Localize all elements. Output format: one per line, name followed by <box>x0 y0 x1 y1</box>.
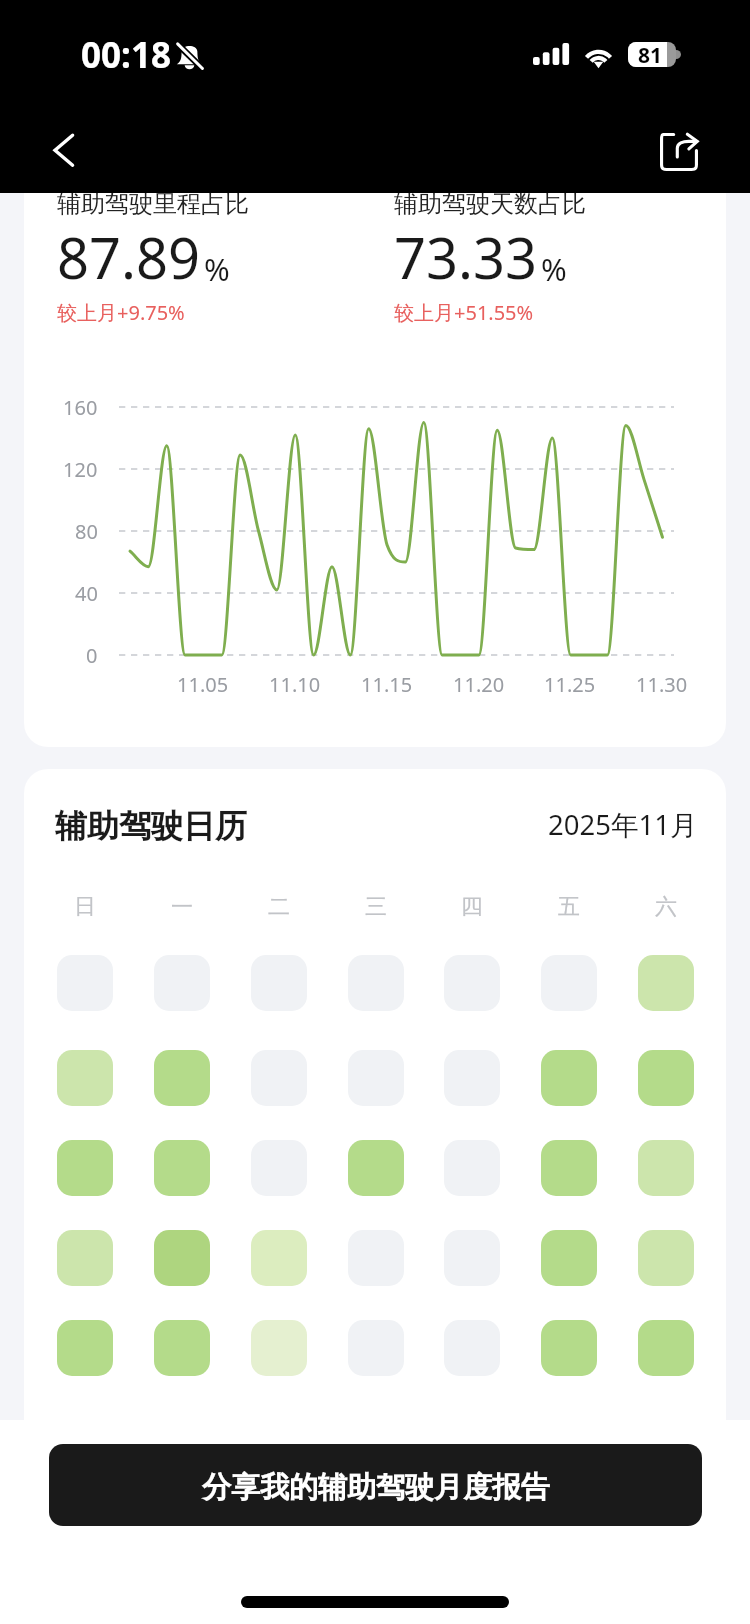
staticText: % <box>541 248 567 290</box>
staticText: 11.25 <box>544 671 596 698</box>
button[interactable] <box>444 1140 500 1196</box>
staticText: 87.89 <box>57 219 201 295</box>
button[interactable] <box>154 1320 210 1376</box>
staticText: 11.30 <box>636 671 688 698</box>
button[interactable] <box>57 1140 113 1196</box>
button[interactable] <box>444 1320 500 1376</box>
button[interactable] <box>251 1140 307 1196</box>
staticText: 较上月+9.75% <box>57 299 185 326</box>
button[interactable]: 分享我的辅助驾驶月度报告 <box>49 1444 702 1526</box>
button[interactable] <box>541 1320 597 1376</box>
button[interactable] <box>638 1320 694 1376</box>
staticText: 一 <box>171 893 193 921</box>
button[interactable] <box>251 1230 307 1286</box>
button[interactable] <box>348 955 404 1011</box>
button[interactable] <box>154 1140 210 1196</box>
staticText: 五 <box>558 893 580 921</box>
button[interactable] <box>638 1050 694 1106</box>
button[interactable] <box>348 1320 404 1376</box>
button[interactable] <box>251 1050 307 1106</box>
button[interactable] <box>348 1050 404 1106</box>
staticText: 73.33 <box>394 219 538 295</box>
button[interactable] <box>541 1050 597 1106</box>
button[interactable]: Back <box>29 117 97 185</box>
staticText: 二 <box>268 893 290 921</box>
staticText: 六 <box>655 893 677 921</box>
button[interactable] <box>57 955 113 1011</box>
button[interactable] <box>57 1320 113 1376</box>
button[interactable] <box>348 1230 404 1286</box>
button[interactable] <box>444 1230 500 1286</box>
staticText: 辅助驾驶天数占比 <box>394 189 586 219</box>
staticText: 2025年11月 <box>548 806 698 844</box>
button[interactable] <box>57 1230 113 1286</box>
staticText: 11.20 <box>453 671 505 698</box>
button[interactable] <box>348 1140 404 1196</box>
staticText: 分享我的辅助驾驶月度报告 <box>202 1469 550 1506</box>
staticText: 11.05 <box>177 671 229 698</box>
button[interactable] <box>251 1320 307 1376</box>
button[interactable] <box>541 1230 597 1286</box>
button[interactable] <box>638 1140 694 1196</box>
staticText: 81 <box>638 42 663 66</box>
staticText: 0 <box>86 642 98 669</box>
button[interactable] <box>154 1050 210 1106</box>
staticText: % <box>204 248 230 290</box>
staticText: 三 <box>365 893 387 921</box>
button[interactable] <box>154 1230 210 1286</box>
button[interactable] <box>541 955 597 1011</box>
staticText: 40 <box>75 580 98 607</box>
button[interactable] <box>57 1050 113 1106</box>
button[interactable] <box>444 1050 500 1106</box>
button[interactable] <box>154 955 210 1011</box>
button[interactable] <box>251 955 307 1011</box>
button[interactable] <box>444 955 500 1011</box>
button[interactable] <box>638 1230 694 1286</box>
button[interactable] <box>541 1140 597 1196</box>
staticText: 辅助驾驶里程占比 <box>57 189 249 219</box>
staticText: 80 <box>75 518 98 545</box>
button[interactable] <box>638 955 694 1011</box>
staticText: 11.10 <box>269 671 321 698</box>
button[interactable]: Share <box>660 133 698 171</box>
staticText: 日 <box>74 893 96 921</box>
staticText: 辅助驾驶日历 <box>55 806 247 846</box>
staticText: 00:18 <box>81 31 171 79</box>
staticText: 四 <box>461 893 483 921</box>
staticText: 较上月+51.55% <box>394 299 534 326</box>
staticText: 160 <box>63 394 98 421</box>
staticText: 120 <box>63 456 98 483</box>
staticText: 11.15 <box>361 671 413 698</box>
